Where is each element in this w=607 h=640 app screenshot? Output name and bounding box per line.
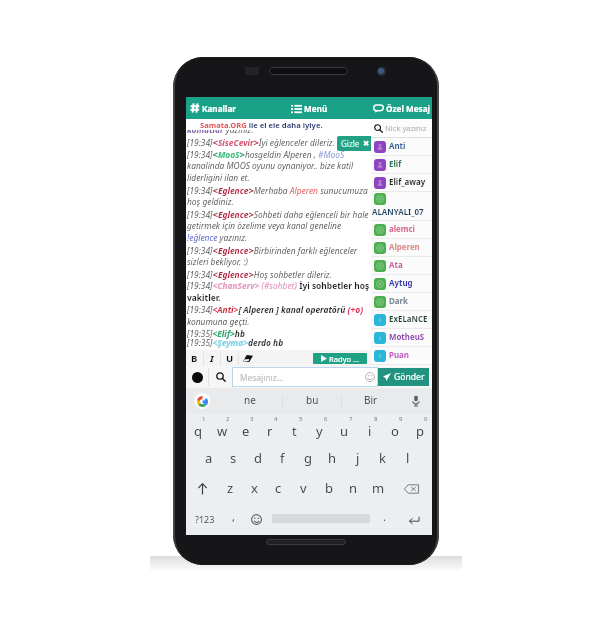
button[interactable]: alemci [371, 221, 432, 239]
staticText: Ata [389, 260, 403, 271]
button[interactable]: k [370, 444, 395, 474]
button[interactable]: Shift [186, 474, 218, 504]
button[interactable]: s [221, 444, 245, 474]
staticText: 7 [349, 415, 353, 423]
button[interactable]: m [366, 474, 391, 504]
button[interactable]: bu [283, 388, 341, 414]
staticText: 6 [324, 415, 328, 423]
staticText: Alperen [389, 242, 420, 253]
button[interactable]: Italic [204, 350, 220, 366]
staticText: [19:34]<Eglence>Hoş sohbetler dileriz. [187, 268, 370, 281]
staticText: kanalinda MOOS oyunu oynaniyor.. bize ka… [187, 160, 370, 171]
button[interactable]: Emoji [244, 504, 268, 535]
button[interactable]: Bold [186, 350, 203, 366]
button[interactable]: c [266, 474, 291, 504]
button[interactable]: 2 [210, 414, 234, 444]
staticText: Menü [304, 103, 328, 114]
staticText: Mesajınız... [240, 372, 284, 383]
staticText: 3 [250, 415, 254, 423]
button[interactable]: Search [209, 366, 232, 388]
button[interactable]: Kanallar [186, 97, 286, 119]
button[interactable]: Elif_away [371, 174, 432, 192]
staticText: vakitler. [187, 292, 370, 303]
button[interactable]: Underline [221, 350, 238, 366]
button[interactable]: l [395, 444, 420, 474]
staticText: bu [306, 393, 319, 407]
button[interactable]: . [374, 504, 395, 535]
button[interactable]: Elif [371, 156, 432, 174]
button[interactable]: v [291, 474, 316, 504]
staticText: Aytug [389, 278, 413, 289]
button[interactable]: 8 [357, 414, 382, 444]
button[interactable]: Alperen [371, 239, 432, 257]
button[interactable]: a [197, 444, 221, 474]
staticText: a [205, 449, 213, 467]
button[interactable]: x [242, 474, 266, 504]
staticText: , [232, 509, 235, 524]
staticText: I [210, 352, 214, 365]
button[interactable]: Clear formatting [239, 350, 256, 366]
button[interactable]: Nick yazınız [371, 119, 432, 137]
button[interactable]: 4 [258, 414, 282, 444]
button[interactable]: j [345, 444, 370, 474]
button[interactable]: f [270, 444, 295, 474]
staticText: q [194, 422, 202, 440]
button[interactable]: Aytug [371, 275, 432, 293]
button[interactable]: d [245, 444, 270, 474]
staticText: liderligini ilan et. [187, 172, 370, 183]
button[interactable]: n [341, 474, 366, 504]
button[interactable]: Özel Mesaj [372, 97, 432, 119]
staticText: ExELaNCE [389, 314, 428, 325]
staticText: h [328, 449, 337, 467]
button[interactable]: 6 [307, 414, 332, 444]
button[interactable]: Ata [371, 257, 432, 275]
button[interactable]: 9 [382, 414, 407, 444]
button[interactable]: 1 [186, 414, 210, 444]
staticText: Bir [364, 393, 378, 407]
staticText: u [340, 422, 349, 440]
staticText: ?123 [195, 513, 215, 525]
button[interactable]: ne [218, 388, 282, 414]
button[interactable]: Puan [371, 347, 432, 365]
button[interactable]: 0 [407, 414, 432, 444]
staticText: w [217, 422, 228, 440]
staticText: e [242, 422, 250, 440]
button[interactable]: 7 [332, 414, 357, 444]
button[interactable]: 3 [234, 414, 258, 444]
staticText: 0 [424, 415, 428, 423]
button[interactable]: Gizle [337, 136, 374, 151]
button[interactable]: Bir [342, 388, 400, 414]
staticText: U [226, 352, 234, 365]
staticText: konumuna geçti. [187, 316, 370, 327]
button[interactable]: Dark [371, 293, 432, 311]
staticText: [19:34]<Eglence>Birbirinden farklı eğlen… [187, 244, 370, 257]
button[interactable]: ExELaNCE [371, 311, 432, 329]
button[interactable]: Voice input [400, 388, 432, 414]
button[interactable]: ?123 [186, 504, 223, 535]
button[interactable]: MotheuS [371, 329, 432, 347]
button[interactable]: ALANYALI_07 [371, 192, 432, 221]
button[interactable]: Mesajınız... [232, 367, 378, 387]
button[interactable]: Text colour [186, 366, 208, 388]
staticText: [19:34]<Anti>[ Alperen ] kanal operatörü… [187, 304, 370, 315]
button[interactable]: Backspace [391, 474, 432, 504]
staticText: [19:34]<SiseCevir>İyi eğlenceler dileriz… [187, 136, 370, 149]
button[interactable]: Enter [395, 504, 432, 535]
button[interactable]: g [295, 444, 320, 474]
button[interactable]: , [223, 504, 244, 535]
button[interactable]: Space [268, 504, 374, 535]
staticText: k [379, 449, 386, 467]
button[interactable]: z [218, 474, 242, 504]
button[interactable]: Menü [286, 97, 372, 119]
button[interactable]: 5 [282, 414, 307, 444]
staticText: 1 [202, 415, 206, 423]
button[interactable]: h [320, 444, 345, 474]
staticText: B [191, 352, 198, 365]
staticText: f [280, 449, 285, 467]
button[interactable]: b [316, 474, 341, 504]
button[interactable]: Gönder [378, 368, 429, 386]
button[interactable]: Google [186, 388, 218, 414]
button[interactable]: Anti [371, 138, 432, 156]
button[interactable]: Radyo ... [313, 353, 367, 364]
staticText: alemci [389, 224, 415, 235]
